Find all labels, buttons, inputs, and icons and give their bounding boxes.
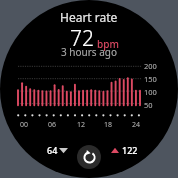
staticText: Heart rate <box>60 9 118 25</box>
button[interactable]: 122 <box>111 144 138 156</box>
staticText: 00 <box>17 120 31 130</box>
staticText: 18 <box>101 120 115 130</box>
staticText: 3 hours ago <box>61 45 118 59</box>
button[interactable]: 64 <box>47 144 68 156</box>
staticText: 50 <box>144 100 153 110</box>
staticText: 72 <box>70 24 94 53</box>
staticText: 122 <box>122 144 138 156</box>
staticText: 24 <box>129 120 143 130</box>
staticText: bpm <box>97 37 119 51</box>
staticText: 64 <box>47 144 58 156</box>
staticText: 100 <box>144 87 157 97</box>
staticText: 12 <box>74 120 88 130</box>
staticText: 06 <box>45 120 59 130</box>
staticText: 150 <box>144 74 157 84</box>
staticText: 200 <box>144 61 157 71</box>
button[interactable]: Refresh <box>77 145 101 169</box>
